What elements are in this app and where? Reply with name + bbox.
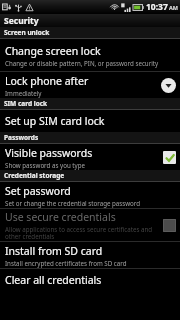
staticText: Security [4, 15, 39, 27]
staticText: Set password [5, 184, 71, 198]
staticText: SIM card lock [4, 99, 48, 108]
button[interactable]: Change screen lock [0, 39, 180, 71]
button[interactable]: Lock phone after, choose delay [161, 78, 176, 93]
button[interactable]: Use secure credentials [0, 209, 180, 241]
staticText: Lock phone after [5, 74, 89, 88]
staticText: Change or disable pattern, PIN, or passw… [5, 59, 159, 67]
staticText: Screen unlock [4, 28, 50, 37]
staticText: Visible passwords [5, 146, 93, 160]
button[interactable]: Set password [0, 182, 180, 208]
staticText: Install from SD card [5, 244, 103, 258]
staticText: Use secure credentials [5, 210, 116, 224]
staticText: Passwords [4, 133, 39, 142]
staticText: Set or change the credential storage pas… [5, 199, 141, 207]
staticText: Set up SIM card lock [5, 114, 105, 128]
staticText: AM [169, 4, 178, 11]
staticText: Change screen lock [5, 44, 101, 58]
staticText: Clear all credentials [5, 273, 102, 287]
button[interactable]: Visible passwords, checked [163, 151, 176, 164]
staticText: Show password as you type [5, 161, 86, 169]
button[interactable]: Use secure credentials, unchecked [163, 219, 176, 232]
staticText: 10:37 [146, 1, 168, 13]
button[interactable]: Lock phone after [0, 72, 180, 98]
staticText: Credential storage [4, 171, 65, 180]
staticText: Immediately [5, 89, 42, 97]
button[interactable]: Set up SIM card lock [0, 110, 180, 132]
staticText: Allow applications to access secure cert… [5, 225, 160, 241]
button[interactable]: Install from SD card [0, 242, 180, 268]
button[interactable]: Clear all credentials [0, 269, 180, 291]
button[interactable]: Visible passwords [0, 144, 180, 170]
staticText: Install encrypted certificates from SD c… [5, 259, 127, 267]
